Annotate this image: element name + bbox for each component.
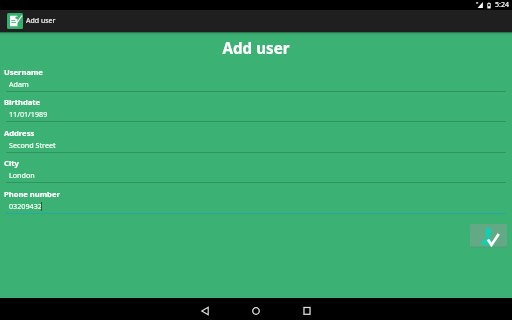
staticText: 03209432 (9, 201, 42, 211)
staticText: London (9, 170, 35, 180)
staticText: City (4, 158, 19, 168)
button[interactable]: Address (0, 128, 512, 153)
staticText: Birthdate (4, 97, 41, 107)
button[interactable]: City (0, 158, 512, 183)
staticText: Adam (9, 79, 29, 89)
button[interactable]: Recent apps (290, 298, 324, 320)
staticText: Second Street (9, 140, 56, 150)
button[interactable]: Birthdate (0, 97, 512, 122)
button[interactable]: Home (239, 298, 273, 320)
button[interactable]: Add user (470, 224, 507, 247)
staticText: 5:24 (495, 0, 509, 10)
staticText: Phone number (4, 189, 60, 199)
staticText: 11/01/1989 (9, 109, 48, 119)
button[interactable]: Username (0, 67, 512, 92)
staticText: Add user (0, 38, 512, 59)
button[interactable]: Phone number (0, 189, 512, 214)
staticText: Username (4, 67, 43, 77)
staticText: Address (4, 128, 35, 138)
staticText: Add user (26, 16, 56, 26)
button[interactable]: Back (188, 298, 222, 320)
